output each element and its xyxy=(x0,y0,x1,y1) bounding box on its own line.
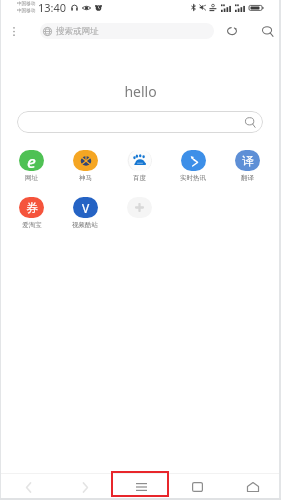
button[interactable]: e xyxy=(5,150,58,182)
staticText: 译 xyxy=(242,153,254,168)
button[interactable]: Forward xyxy=(57,474,113,500)
staticText: 搜索或网址 xyxy=(56,26,99,37)
staticText: 13:40 xyxy=(38,0,67,15)
staticText: e xyxy=(27,150,36,171)
button[interactable]: 百度 xyxy=(112,150,166,182)
staticText: 中国移动 xyxy=(17,1,36,7)
staticText: V xyxy=(82,200,90,216)
staticText: 券 xyxy=(26,200,38,215)
staticText: 实时热讯 xyxy=(180,174,206,182)
button[interactable]: Menu xyxy=(113,474,169,500)
staticText: 中国移动 xyxy=(17,8,36,14)
staticText: 视频酷站 xyxy=(72,221,98,229)
staticText: 翻译 xyxy=(241,174,254,182)
other: Search xyxy=(245,117,256,128)
staticText: 网址 xyxy=(25,174,38,182)
button[interactable]: Search xyxy=(17,111,263,133)
staticText: 百度 xyxy=(133,174,146,182)
button[interactable] xyxy=(112,197,166,221)
button[interactable]: 译 xyxy=(220,150,274,182)
button[interactable]: Back xyxy=(0,474,57,500)
staticText: 爱淘宝 xyxy=(22,221,42,229)
button[interactable]: Search xyxy=(260,15,276,47)
staticText: hello xyxy=(0,82,281,101)
button[interactable]: Reload xyxy=(223,15,241,47)
button[interactable]: 实时热讯 xyxy=(166,150,220,182)
button[interactable]: Home xyxy=(225,474,281,500)
button[interactable]: 搜索或网址 xyxy=(40,23,214,39)
button[interactable]: V xyxy=(58,197,112,229)
button[interactable]: More options xyxy=(0,15,28,47)
button[interactable]: Recents xyxy=(169,474,225,500)
button[interactable]: 神马 xyxy=(58,150,112,182)
staticText: 神马 xyxy=(79,174,92,182)
button[interactable]: 券 xyxy=(5,197,58,229)
